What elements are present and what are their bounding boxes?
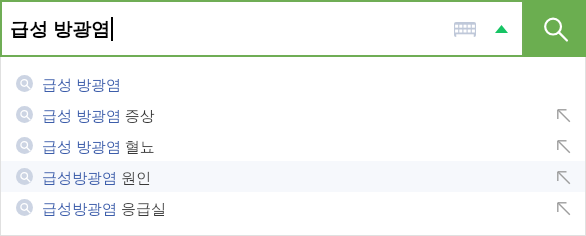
button[interactable]: 급성 방광염 증상 (0, 99, 586, 130)
button[interactable]: Insert suggestion (548, 100, 578, 130)
button[interactable]: 급성 방광염 (0, 0, 524, 57)
staticText: 급성 방광염 (42, 74, 121, 94)
staticText: 급성방광염 응급실 (42, 198, 166, 218)
button[interactable]: Search (524, 0, 586, 57)
staticText: 급성 방광염 (10, 16, 110, 42)
button[interactable]: 급성방광염 원인 (0, 161, 586, 192)
button[interactable]: 급성 방광염 혈뇨 (0, 130, 586, 161)
button[interactable]: Insert suggestion (548, 162, 578, 192)
button[interactable]: Insert suggestion (548, 193, 578, 223)
staticText: 급성 방광염 증상 (42, 105, 155, 125)
staticText: 급성 방광염 혈뇨 (42, 136, 155, 156)
button[interactable]: Keyboard (450, 16, 480, 42)
button[interactable]: Insert suggestion (548, 131, 578, 161)
button[interactable]: Collapse suggestions (488, 16, 514, 42)
button[interactable]: 급성방광염 응급실 (0, 192, 586, 223)
staticText: 급성방광염 원인 (42, 167, 151, 187)
button[interactable]: 급성 방광염 (0, 68, 586, 99)
